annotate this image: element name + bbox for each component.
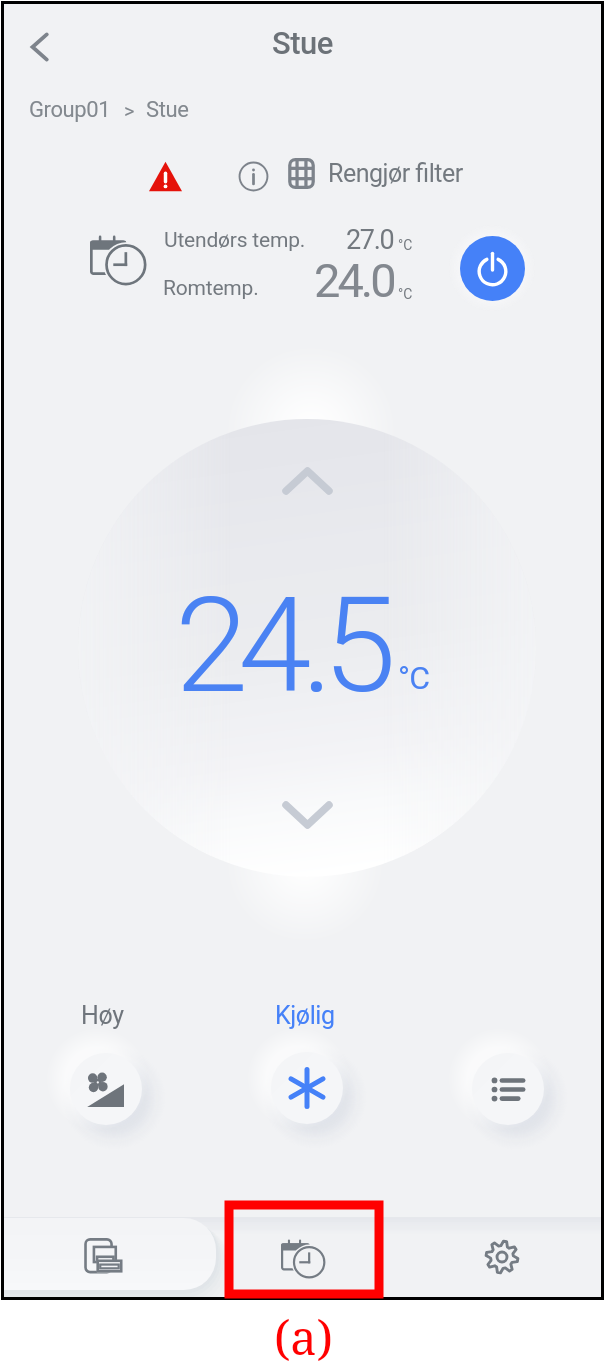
button[interactable]: Cool mode: [271, 1052, 343, 1124]
button[interactable]: Increase temperature: [262, 446, 352, 536]
button[interactable]: Information: [230, 153, 276, 199]
staticText: °C: [398, 237, 413, 253]
staticText: Høy: [81, 1001, 124, 1030]
staticText: Stue: [146, 97, 189, 123]
button[interactable]: Warning: [141, 152, 189, 200]
staticText: Utendørs temp.: [164, 228, 306, 253]
staticText: 24.0: [314, 253, 394, 308]
button[interactable]: Settings: [402, 1217, 601, 1297]
staticText: 24.5: [175, 569, 387, 724]
button[interactable]: Decrease temperature: [262, 782, 352, 872]
button[interactable]: Group01: [29, 97, 189, 123]
staticText: (a): [274, 1305, 333, 1369]
button[interactable]: Fan speed: [70, 1053, 142, 1125]
button[interactable]: Back: [9, 16, 71, 78]
staticText: Group01: [29, 97, 111, 123]
button[interactable]: Schedule: [203, 1217, 402, 1297]
staticText: Stue: [272, 25, 333, 61]
staticText: Kjølig: [275, 1001, 335, 1030]
staticText: Romtemp.: [163, 276, 259, 301]
button[interactable]: Rengjør filter: [286, 152, 463, 194]
staticText: °C: [398, 286, 413, 302]
staticText: °C: [398, 659, 430, 697]
button[interactable]: More options: [472, 1053, 544, 1125]
button[interactable]: Devices: [4, 1217, 203, 1297]
button[interactable]: Power: [460, 236, 525, 301]
staticText: 27.0: [346, 224, 394, 256]
staticText: >: [124, 99, 135, 122]
staticText: Rengjør filter: [328, 159, 463, 188]
